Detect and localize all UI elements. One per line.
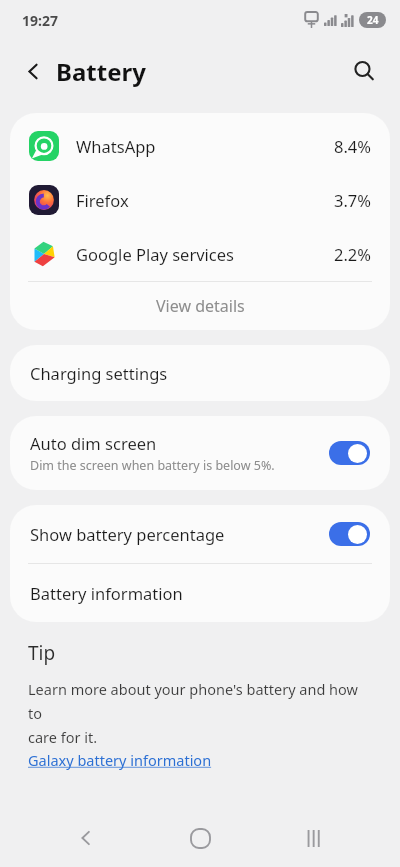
button[interactable]: Back (58, 810, 114, 866)
button[interactable]: WhatsApp (10, 119, 390, 173)
button[interactable]: Search (344, 51, 384, 91)
staticText: Google Play services (76, 243, 234, 265)
button[interactable]: Auto dim screen (10, 416, 390, 490)
staticText: Firefox (76, 189, 129, 211)
button[interactable]: Battery information (10, 564, 390, 622)
button[interactable]: Google Play services (10, 227, 390, 281)
staticText: View details (156, 295, 245, 317)
staticText: 3.7% (334, 189, 372, 211)
button[interactable]: View details (10, 282, 390, 330)
staticText: Battery (56, 55, 146, 88)
button[interactable]: Recent apps (286, 810, 342, 866)
button[interactable]: Firefox (10, 173, 390, 227)
staticText: 19:27 (22, 11, 58, 30)
button[interactable]: Back (16, 54, 50, 88)
staticText: Tip (28, 640, 56, 666)
button[interactable]: Home (172, 810, 228, 866)
button[interactable]: Toggle (329, 522, 370, 546)
button[interactable]: Toggle (329, 441, 370, 465)
staticText: Charging settings (30, 362, 168, 384)
staticText: 24 (367, 13, 379, 27)
staticText: Galaxy battery information (28, 750, 212, 770)
button[interactable]: Galaxy battery information (28, 750, 212, 770)
staticText: Battery information (30, 582, 183, 604)
staticText: 2.2% (334, 243, 372, 265)
staticText: WhatsApp (76, 135, 156, 157)
staticText: Auto dim screen (30, 432, 157, 454)
staticText: 8.4% (334, 135, 372, 157)
staticText: Learn more about your phone's battery an… (28, 679, 372, 747)
staticText: Dim the screen when battery is below 5%. (30, 457, 275, 474)
staticText: Show battery percentage (30, 523, 329, 545)
button[interactable]: Show battery percentage (10, 505, 390, 563)
button[interactable]: Charging settings (10, 345, 390, 401)
